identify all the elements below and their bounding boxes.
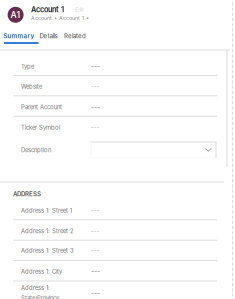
staticText: Website [21,83,42,90]
button[interactable]: Account avatar [8,7,24,23]
staticText: Account 1 [31,5,64,14]
button[interactable]: Address 1: City [21,263,217,280]
staticText: Related [64,32,86,40]
staticText: Description [21,146,51,154]
button[interactable]: Type [21,58,217,75]
staticText: --- [91,207,100,214]
staticText: --- [91,289,100,297]
staticText: Parent Account [21,103,62,111]
button[interactable]: Related [63,29,87,42]
button[interactable]: Website [21,78,217,95]
staticText: Edit [75,6,84,13]
staticText: --- [91,62,100,71]
button[interactable]: Summary [3,29,35,42]
staticText: A1 [11,10,21,20]
staticText: Address 1: City [21,268,62,275]
button[interactable]: Edit [75,5,89,13]
button[interactable]: Description [90,141,216,158]
button[interactable]: Ticker Symbol [21,119,217,136]
staticText: Address 1: Street 2 [21,227,74,235]
button[interactable]: Address 1: Street 1 [21,202,217,219]
staticText: --- [91,228,100,234]
staticText: Type [21,63,34,70]
staticText: --- [91,267,100,276]
staticText: --- [91,83,100,90]
staticText: --- [91,103,100,111]
staticText: State/Province [21,294,59,299]
button[interactable]: Details [37,29,59,42]
staticText: Ticker Symbol [21,124,60,131]
button[interactable]: Address 1: Street 2 [21,222,217,239]
staticText: Account • Account 1 • [31,15,89,21]
staticText: Address 1: Street 3 [21,247,74,254]
staticText: Summary [3,32,34,40]
staticText: Details [39,32,57,40]
button[interactable]: Parent Account [21,98,217,115]
staticText: --- [91,124,100,131]
staticText: --- [91,247,100,254]
staticText: Address 1: [21,284,50,291]
staticText: ADDRESS [13,190,41,198]
button[interactable]: Address 1: Street 3 [21,242,217,259]
button[interactable]: Address 1: [21,284,217,299]
staticText: Address 1: Street 1 [21,207,72,214]
